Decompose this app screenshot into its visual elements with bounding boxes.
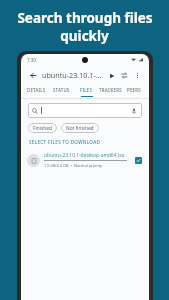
button[interactable]: TRACKERS xyxy=(98,85,122,98)
staticText: PEERS xyxy=(127,87,141,93)
button[interactable]: Back xyxy=(26,68,40,82)
staticText: 1.5 kB/4.4 GB • Normal priority xyxy=(44,163,103,168)
staticText: FILES xyxy=(80,87,93,93)
staticText: 7:30 xyxy=(27,57,36,63)
staticText: ubuntu-23.10.1-desktop-amd64.iso xyxy=(44,152,125,159)
button[interactable]: Sequential download xyxy=(118,69,131,82)
button[interactable]: More options xyxy=(131,69,144,82)
staticText: quickly xyxy=(60,27,109,45)
button[interactable]: Select file xyxy=(133,155,143,165)
staticText: ubuntu-23.10.1-des... xyxy=(42,70,105,80)
button[interactable]: STATUS xyxy=(49,85,74,98)
button[interactable]: Finished xyxy=(28,123,57,133)
staticText: DETAILS xyxy=(27,87,46,93)
button[interactable]: ubuntu-23.10.1-desktop-amd64.iso xyxy=(21,150,149,170)
staticText: Search through files xyxy=(17,9,153,27)
button[interactable]: FILES xyxy=(74,85,98,98)
button[interactable]: Not finished xyxy=(61,123,99,133)
button[interactable]: Voice search xyxy=(28,103,142,118)
button[interactable]: PEERS xyxy=(122,85,146,98)
staticText: STATUS xyxy=(53,87,70,93)
button[interactable]: Voice search xyxy=(130,107,138,115)
button[interactable]: Play xyxy=(105,69,118,82)
staticText: SELECT FILES TO DOWNLOAD xyxy=(29,139,101,145)
staticText: TRACKERS xyxy=(99,87,122,93)
button[interactable]: DETAILS xyxy=(24,85,49,98)
staticText: Not finished xyxy=(66,125,94,132)
staticText: Finished xyxy=(33,125,52,132)
